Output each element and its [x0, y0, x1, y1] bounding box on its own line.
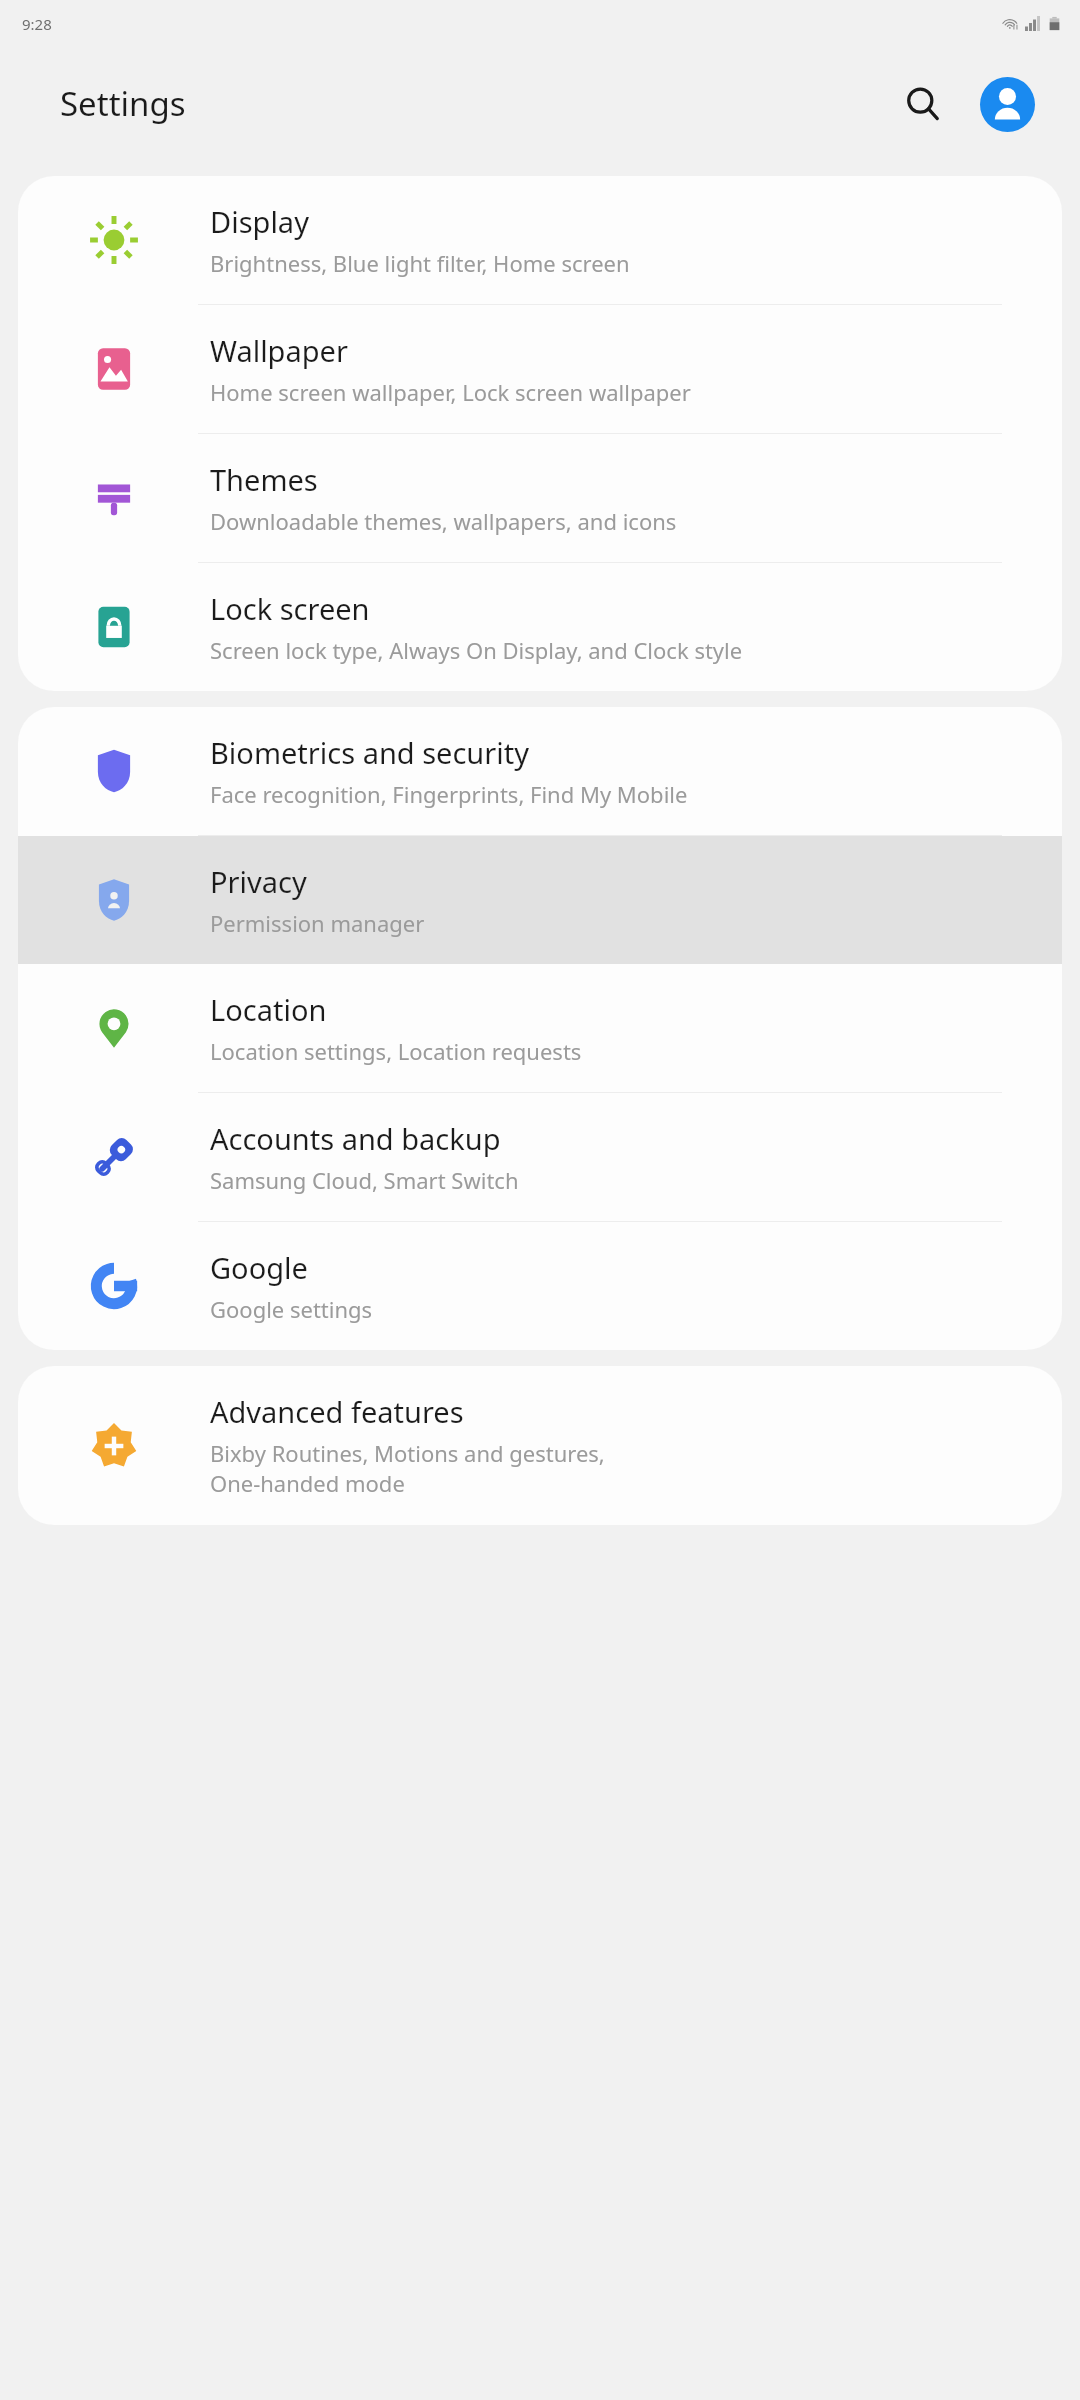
staticText: Screen lock type, Always On Display, and… [210, 635, 743, 665]
staticText: Privacy [210, 862, 307, 901]
button[interactable]: Google [18, 1222, 1062, 1350]
button[interactable]: Search [892, 73, 954, 135]
staticText: Biometrics and security [210, 733, 530, 772]
button[interactable]: Accounts and backup [18, 1093, 1062, 1221]
staticText: Display [210, 202, 309, 241]
staticText: Google settings [210, 1294, 373, 1324]
button[interactable]: Themes [18, 434, 1062, 562]
staticText: Bixby Routines, Motions and gestures, On… [210, 1438, 605, 1499]
staticText: Downloadable themes, wallpapers, and ico… [210, 506, 677, 536]
staticText: Location settings, Location requests [210, 1036, 582, 1066]
button[interactable]: Wallpaper [18, 305, 1062, 433]
staticText: Face recognition, Fingerprints, Find My … [210, 779, 688, 809]
staticText: Lock screen [210, 589, 370, 628]
button[interactable]: Biometrics and security [18, 707, 1062, 835]
staticText: Location [210, 990, 327, 1029]
staticText: Home screen wallpaper, Lock screen wallp… [210, 377, 691, 407]
button[interactable]: Account [976, 73, 1038, 135]
staticText: Accounts and backup [210, 1119, 501, 1158]
button[interactable]: Lock screen [18, 563, 1062, 691]
staticText: Advanced features [210, 1392, 464, 1431]
staticText: Brightness, Blue light filter, Home scre… [210, 248, 630, 278]
button[interactable]: Display [18, 176, 1062, 304]
staticText: 9:28 [22, 14, 52, 34]
button[interactable]: Location [18, 964, 1062, 1092]
staticText: Samsung Cloud, Smart Switch [210, 1165, 519, 1195]
button[interactable]: Advanced features [18, 1366, 1062, 1525]
staticText: Google [210, 1248, 308, 1287]
staticText: Permission manager [210, 908, 425, 938]
staticText: Wallpaper [210, 331, 348, 370]
staticText: Themes [210, 460, 318, 499]
staticText: Settings [60, 81, 186, 126]
button[interactable]: Privacy [18, 836, 1062, 964]
